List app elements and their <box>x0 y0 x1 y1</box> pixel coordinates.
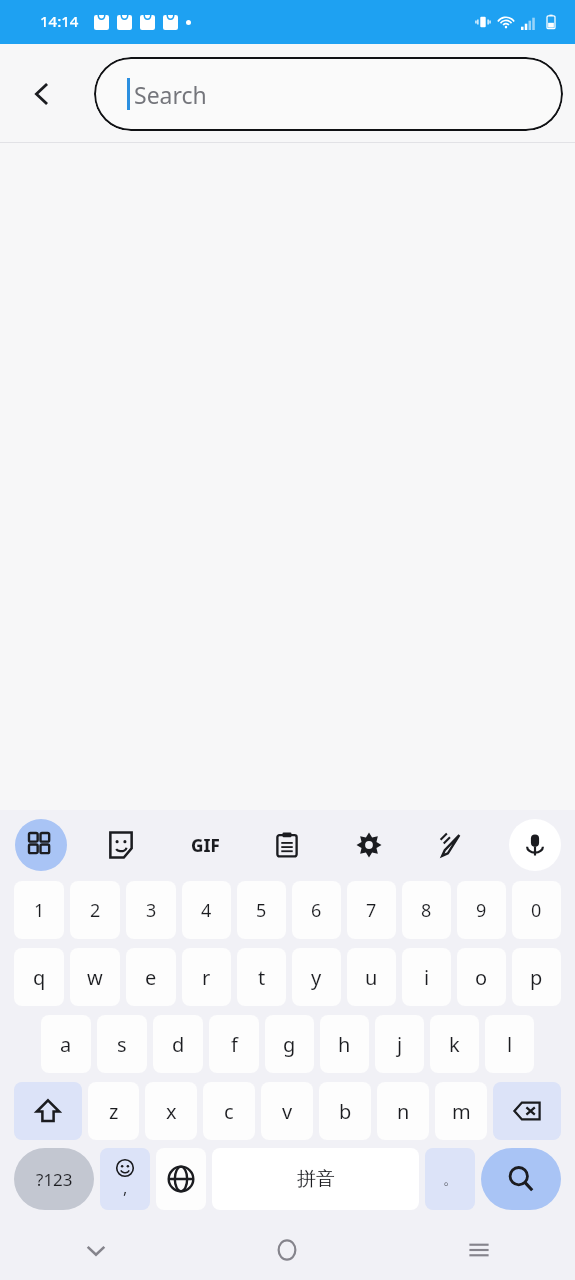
button[interactable]: Back <box>14 66 70 122</box>
staticText: 1 <box>34 898 45 923</box>
staticText: i <box>424 964 430 991</box>
staticText: Search <box>134 79 207 110</box>
button[interactable]: t <box>237 948 286 1006</box>
button[interactable]: e <box>126 948 176 1006</box>
staticText: 。 <box>443 1170 458 1189</box>
button[interactable]: b <box>319 1082 371 1140</box>
staticText: 14:14 <box>40 11 79 31</box>
button[interactable]: s <box>97 1015 147 1073</box>
button[interactable]: n <box>377 1082 429 1140</box>
button[interactable]: Search <box>481 1148 561 1210</box>
staticText: s <box>117 1031 127 1058</box>
button[interactable]: 7 <box>347 881 396 939</box>
staticText: j <box>397 1031 403 1058</box>
staticText: x <box>166 1098 177 1125</box>
button[interactable]: y <box>292 948 341 1006</box>
staticText: 5 <box>256 898 267 923</box>
button[interactable]: Emoji <box>100 1148 150 1210</box>
button[interactable]: d <box>153 1015 203 1073</box>
button[interactable]: p <box>512 948 561 1006</box>
button[interactable]: i <box>402 948 451 1006</box>
staticText: z <box>109 1098 119 1125</box>
button[interactable]: o <box>457 948 506 1006</box>
button[interactable]: Voice input <box>509 819 561 871</box>
staticText: v <box>282 1098 293 1125</box>
button[interactable]: Stickers <box>98 822 144 868</box>
staticText: p <box>530 964 543 991</box>
staticText: 6 <box>311 898 322 923</box>
staticText: r <box>202 964 211 991</box>
button[interactable]: 1 <box>14 881 64 939</box>
button[interactable]: Hide keyboard <box>0 1220 191 1280</box>
button[interactable]: r <box>182 948 231 1006</box>
button[interactable]: k <box>430 1015 479 1073</box>
staticText: e <box>145 964 157 991</box>
staticText: l <box>507 1031 513 1058</box>
button[interactable]: 0 <box>512 881 561 939</box>
button[interactable]: u <box>347 948 396 1006</box>
button[interactable]: 。 <box>425 1148 475 1210</box>
button[interactable]: g <box>265 1015 314 1073</box>
button[interactable]: z <box>88 1082 139 1140</box>
staticText: 9 <box>476 898 487 923</box>
button[interactable]: 2 <box>70 881 120 939</box>
staticText: k <box>449 1031 460 1058</box>
button[interactable]: a <box>41 1015 91 1073</box>
staticText: w <box>87 964 103 991</box>
button[interactable]: Clipboard <box>264 822 310 868</box>
button[interactable]: 拼音 <box>212 1148 419 1210</box>
button[interactable]: h <box>320 1015 369 1073</box>
staticText: d <box>172 1031 185 1058</box>
button[interactable]: m <box>435 1082 487 1140</box>
button[interactable]: l <box>485 1015 534 1073</box>
button[interactable]: Settings <box>346 822 392 868</box>
button[interactable]: w <box>70 948 120 1006</box>
button[interactable]: Shift <box>14 1082 82 1140</box>
staticText: , <box>123 1177 128 1199</box>
staticText: b <box>339 1098 352 1125</box>
staticText: 4 <box>201 898 212 923</box>
staticText: f <box>231 1031 238 1058</box>
button[interactable]: GIF <box>182 822 228 868</box>
staticText: 7 <box>366 898 377 923</box>
button[interactable]: 4 <box>182 881 231 939</box>
staticText: c <box>224 1098 234 1125</box>
button[interactable]: Backspace <box>493 1082 561 1140</box>
staticText: g <box>283 1031 296 1058</box>
button[interactable]: v <box>261 1082 313 1140</box>
button[interactable]: 8 <box>402 881 451 939</box>
staticText: t <box>258 964 266 991</box>
button[interactable]: 5 <box>237 881 286 939</box>
staticText: a <box>60 1031 72 1058</box>
button[interactable]: Search <box>94 57 563 131</box>
button[interactable]: Change language <box>156 1148 206 1210</box>
staticText: y <box>311 964 322 991</box>
button[interactable]: Home <box>191 1220 383 1280</box>
button[interactable]: Keyboard modes <box>15 819 67 871</box>
staticText: 0 <box>531 898 542 923</box>
button[interactable]: Recents <box>383 1220 575 1280</box>
button[interactable]: j <box>375 1015 424 1073</box>
button[interactable]: 6 <box>292 881 341 939</box>
staticText: ?123 <box>36 1168 73 1191</box>
button[interactable]: ?123 <box>14 1148 94 1210</box>
staticText: 2 <box>90 898 101 923</box>
button[interactable]: 3 <box>126 881 176 939</box>
staticText: 8 <box>421 898 432 923</box>
staticText: n <box>397 1098 410 1125</box>
button[interactable]: 9 <box>457 881 506 939</box>
staticText: h <box>338 1031 351 1058</box>
button[interactable]: Handwriting <box>428 822 474 868</box>
staticText: 拼音 <box>297 1167 335 1191</box>
staticText: 3 <box>146 898 157 923</box>
button[interactable]: x <box>145 1082 197 1140</box>
staticText: q <box>33 964 46 991</box>
button[interactable]: f <box>209 1015 259 1073</box>
staticText: u <box>365 964 378 991</box>
staticText: m <box>452 1098 471 1125</box>
button[interactable]: q <box>14 948 64 1006</box>
staticText: GIF <box>191 834 220 857</box>
staticText: o <box>475 964 488 991</box>
button[interactable]: c <box>203 1082 255 1140</box>
